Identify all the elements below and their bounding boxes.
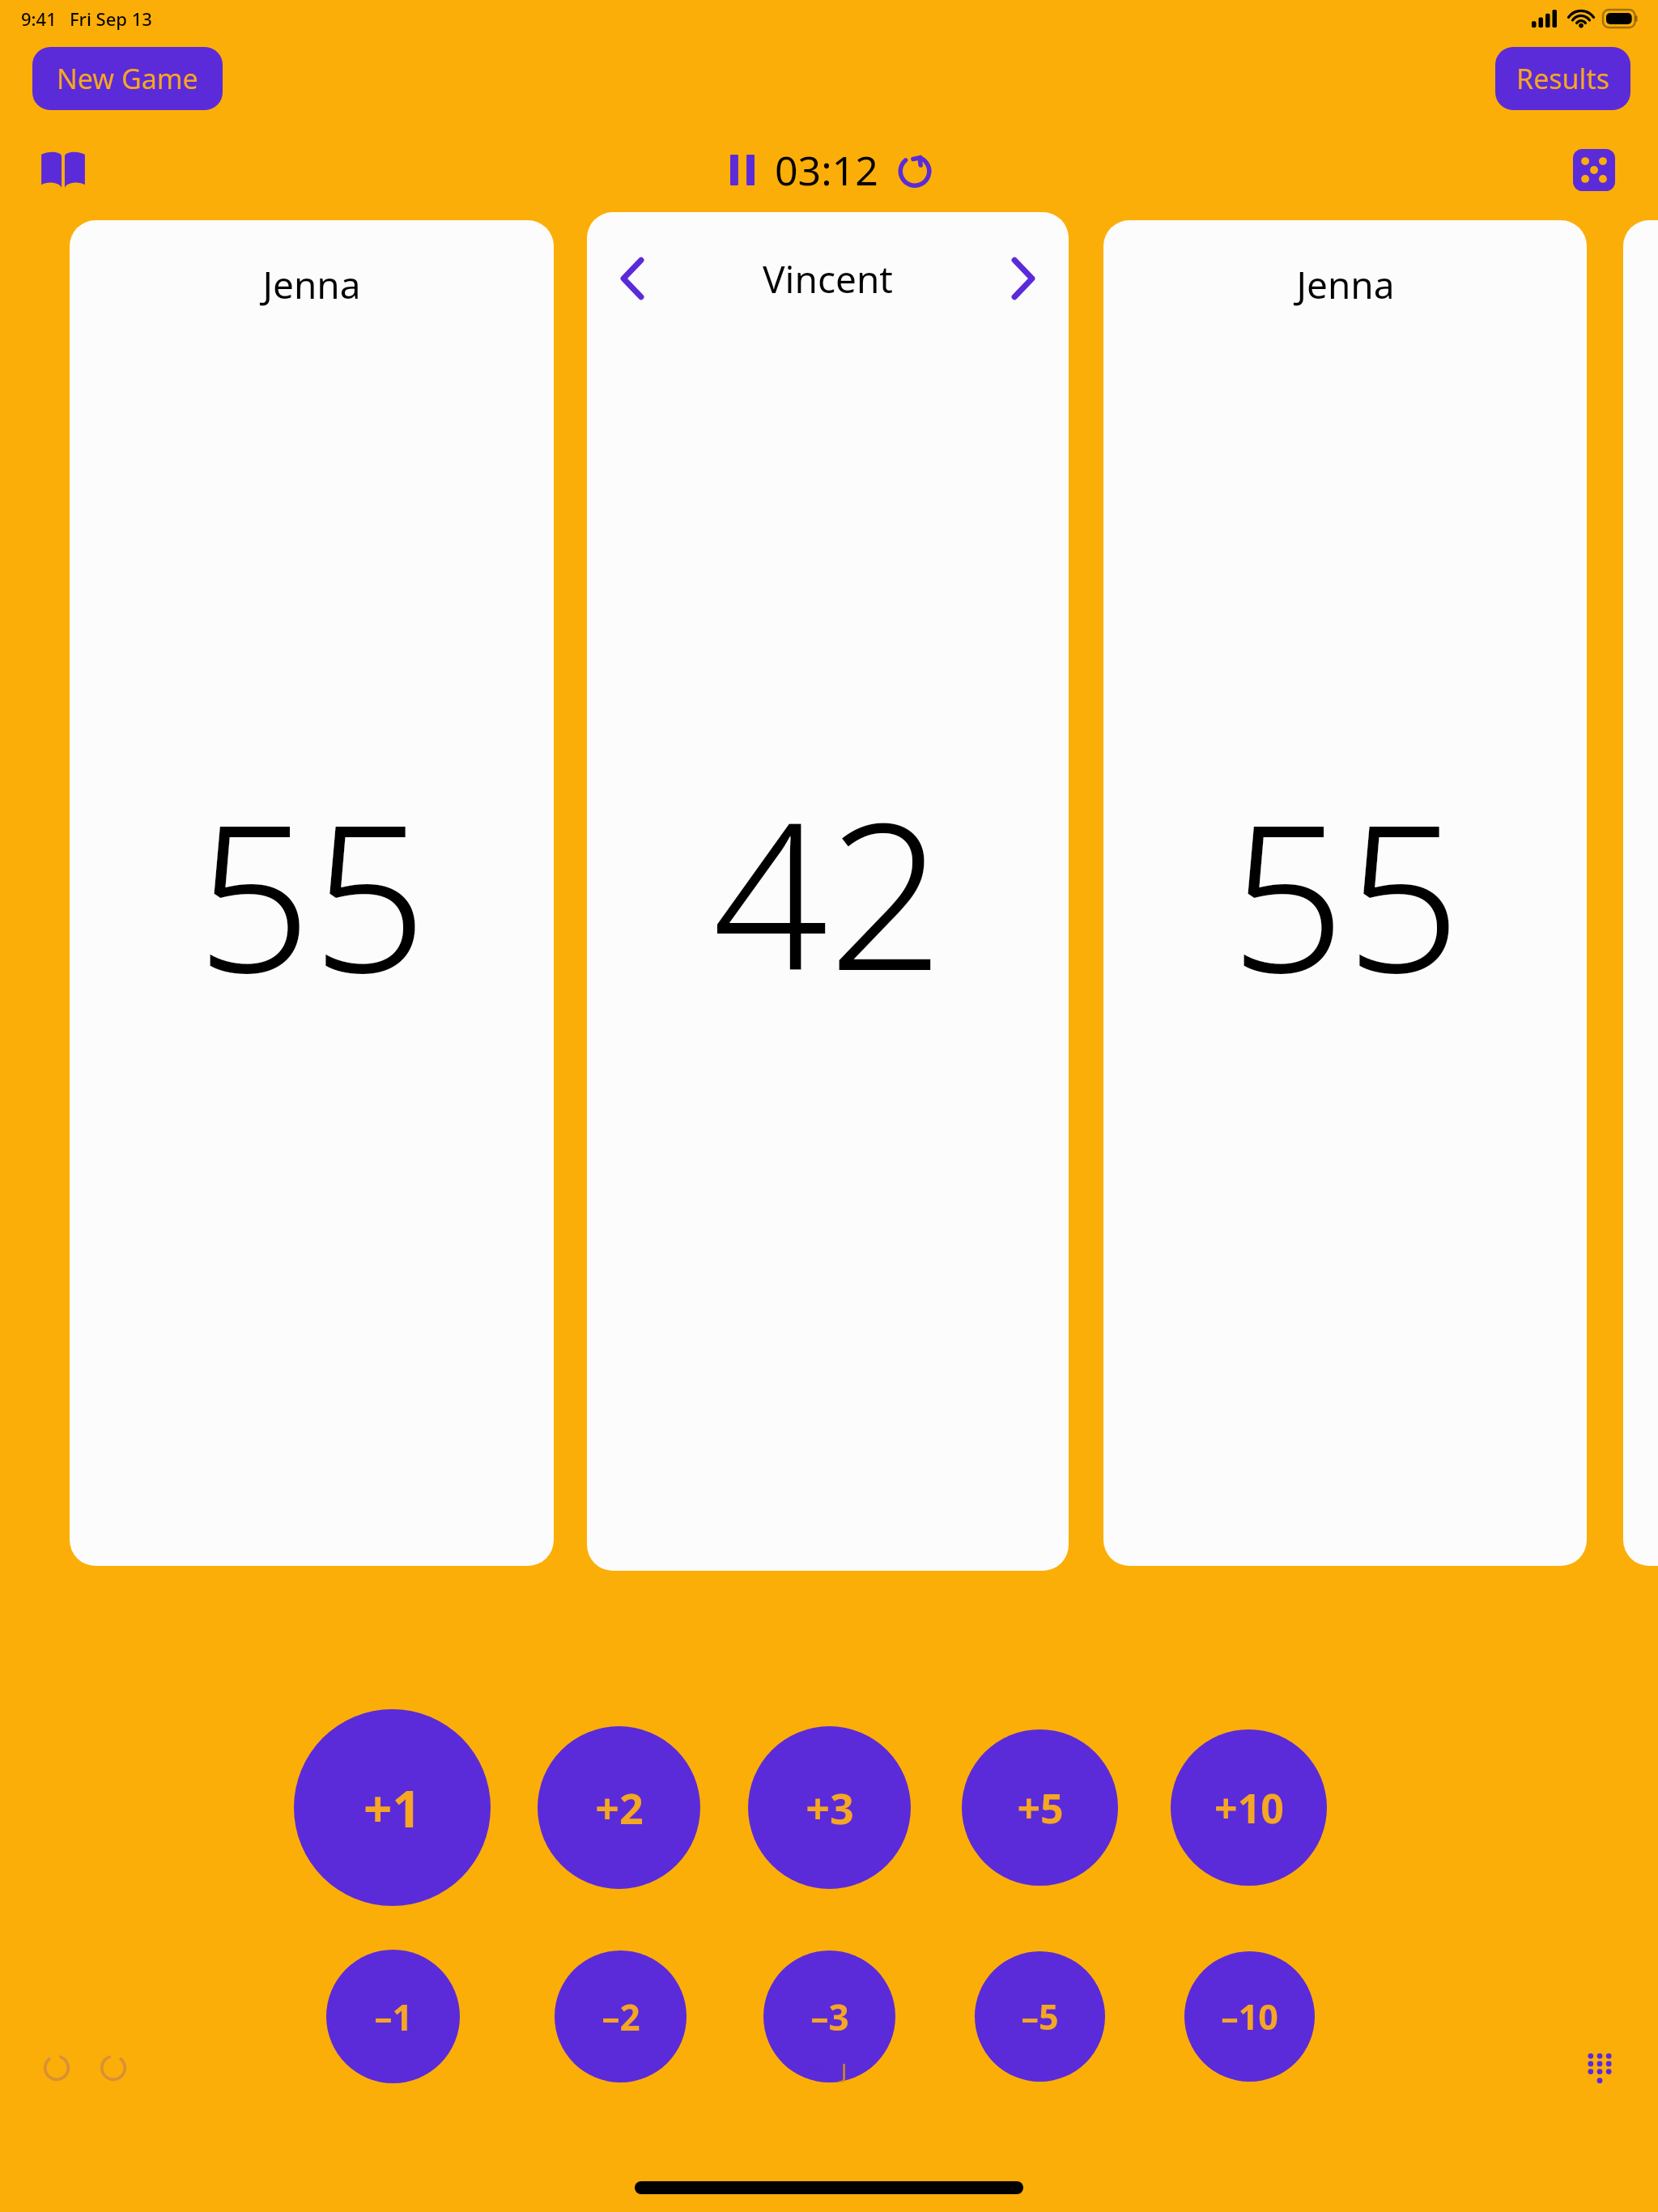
staticText: Fri Sep 13 [70,6,152,31]
button[interactable]: Undo [34,2045,79,2091]
button[interactable]: –1 [326,1950,460,2083]
staticText: +5 [1017,1780,1064,1836]
button[interactable]: Redo [91,2045,136,2091]
button[interactable]: Next player [996,251,1051,306]
button[interactable]: Previous player [587,212,1069,1571]
button[interactable]: Hide keyboard [1575,2044,1624,2092]
button[interactable]: +1 [294,1709,491,1906]
button[interactable]: +5 [962,1729,1118,1886]
staticText: New Game [57,60,198,97]
staticText: +1 [363,1774,421,1842]
button[interactable]: Jenna [1103,220,1587,1566]
button[interactable]: Rules [32,139,94,201]
button[interactable]: Pause [721,149,763,191]
button[interactable]: –10 [1184,1951,1315,2082]
staticText: J [841,2056,848,2084]
staticText: +10 [1214,1780,1284,1836]
staticText: 9:41 [21,6,57,31]
button[interactable]: Roll dice [1566,142,1622,198]
staticText: –2 [602,1993,640,2041]
staticText: –3 [810,1993,849,2041]
staticText: 55 [1230,755,1461,1032]
button[interactable]: –3 [763,1950,895,2082]
staticText: Jenna [262,259,361,310]
staticText: Jenna [1296,259,1395,310]
button[interactable]: +2 [538,1726,700,1889]
staticText: 42 [712,754,944,1030]
staticText: V [810,2056,823,2084]
button[interactable]: Jenna [70,220,554,1566]
button[interactable]: –5 [975,1951,1105,2082]
button[interactable]: –2 [555,1950,687,2082]
button[interactable]: +3 [748,1726,911,1889]
staticText: –1 [374,1993,413,2041]
staticText: –10 [1221,1993,1278,2040]
button[interactable]: +10 [1171,1729,1327,1886]
button[interactable]: Results [1495,47,1630,110]
staticText: +3 [806,1779,854,1836]
button[interactable]: Reset timer [893,148,937,192]
button[interactable]: New Game [32,47,223,110]
staticText: –5 [1021,1993,1059,2040]
button[interactable] [1623,220,1658,1566]
staticText: +2 [595,1779,644,1836]
staticText: Results [1516,60,1609,97]
staticText: Vincent [763,253,893,304]
staticText: 03:12 [775,143,878,198]
staticText: 55 [196,755,427,1032]
button[interactable]: Previous player [605,251,660,306]
